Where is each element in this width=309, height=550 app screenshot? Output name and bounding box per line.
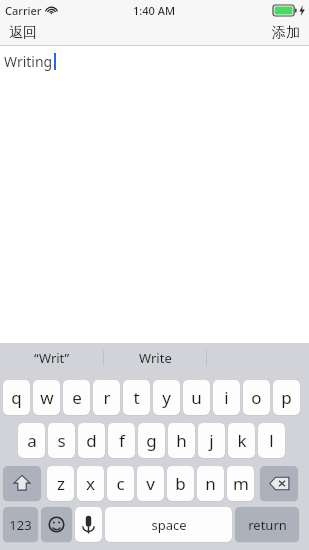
- button[interactable]: 123: [3, 507, 38, 542]
- button[interactable]: Writing: [4, 52, 56, 71]
- staticText: g: [146, 429, 157, 452]
- staticText: 123: [9, 516, 32, 534]
- button[interactable]: v: [137, 466, 164, 501]
- button[interactable]: y: [153, 380, 180, 415]
- button[interactable]: return: [235, 507, 299, 542]
- staticText: Writing: [4, 52, 53, 71]
- button[interactable]: o: [243, 380, 270, 415]
- staticText: i: [224, 386, 229, 409]
- staticText: o: [251, 386, 262, 409]
- staticText: j: [209, 429, 214, 452]
- button[interactable]: l: [258, 423, 285, 458]
- staticText: f: [119, 429, 125, 452]
- staticText: 添加: [272, 24, 300, 42]
- staticText: r: [103, 386, 111, 409]
- staticText: Write: [139, 349, 172, 367]
- staticText: q: [11, 386, 22, 409]
- button[interactable]: p: [273, 380, 300, 415]
- button[interactable]: Emoji: [41, 507, 72, 542]
- button[interactable]: 返回: [9, 20, 37, 46]
- staticText: Carrier: [5, 3, 42, 18]
- staticText: k: [237, 429, 247, 452]
- staticText: space: [151, 516, 187, 534]
- staticText: l: [269, 429, 274, 452]
- staticText: s: [57, 429, 66, 452]
- button[interactable]: i: [213, 380, 240, 415]
- button[interactable]: t: [123, 380, 150, 415]
- staticText: 返回: [9, 24, 37, 42]
- staticText: a: [27, 429, 37, 452]
- button[interactable]: m: [227, 466, 254, 501]
- button[interactable]: Write: [104, 343, 206, 372]
- staticText: y: [162, 386, 171, 409]
- staticText: d: [86, 429, 97, 452]
- staticText: h: [176, 429, 187, 452]
- button[interactable]: d: [78, 423, 105, 458]
- button[interactable]: q: [3, 380, 30, 415]
- button[interactable]: Dictate: [75, 507, 102, 542]
- staticText: c: [116, 472, 125, 495]
- staticText: p: [281, 386, 292, 409]
- button[interactable]: s: [48, 423, 75, 458]
- button[interactable]: 添加: [272, 20, 300, 46]
- staticText: “Writ”: [34, 349, 70, 367]
- staticText: x: [86, 472, 95, 495]
- button[interactable]: g: [138, 423, 165, 458]
- button[interactable]: w: [33, 380, 60, 415]
- staticText: v: [146, 472, 155, 495]
- staticText: w: [40, 386, 54, 409]
- button[interactable]: Shift: [3, 466, 41, 501]
- button[interactable]: k: [228, 423, 255, 458]
- staticText: e: [72, 386, 82, 409]
- staticText: t: [133, 386, 140, 409]
- button[interactable]: b: [167, 466, 194, 501]
- button[interactable]: x: [77, 466, 104, 501]
- button[interactable]: z: [47, 466, 74, 501]
- staticText: n: [205, 472, 216, 495]
- button[interactable]: r: [93, 380, 120, 415]
- button[interactable]: e: [63, 380, 90, 415]
- button[interactable]: u: [183, 380, 210, 415]
- button[interactable]: space: [105, 507, 232, 542]
- button[interactable]: j: [198, 423, 225, 458]
- button[interactable]: f: [108, 423, 135, 458]
- staticText: z: [57, 472, 65, 495]
- button[interactable]: h: [168, 423, 195, 458]
- staticText: m: [233, 472, 249, 495]
- button[interactable]: a: [18, 423, 45, 458]
- staticText: b: [175, 472, 186, 495]
- staticText: 1:40 AM: [133, 3, 176, 18]
- button[interactable]: c: [107, 466, 134, 501]
- staticText: u: [191, 386, 202, 409]
- button[interactable]: “Writ”: [0, 343, 103, 372]
- staticText: return: [248, 516, 287, 534]
- button[interactable]: Delete: [260, 466, 298, 501]
- button[interactable]: n: [197, 466, 224, 501]
